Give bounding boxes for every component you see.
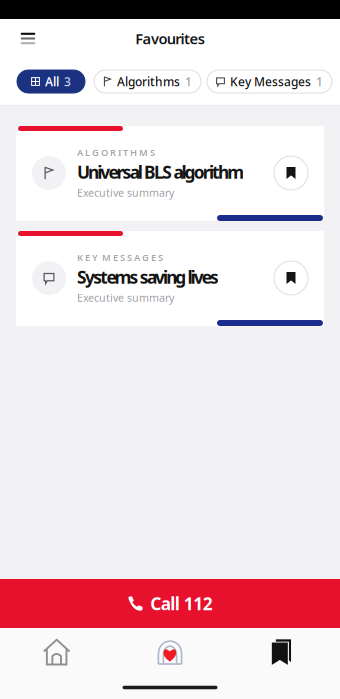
button[interactable]: Menu: [6, 20, 50, 56]
staticText: Executive summary: [77, 186, 174, 200]
button[interactable]: Favourites: [227, 630, 340, 674]
staticText: Call 112: [150, 592, 213, 615]
button[interactable]: K E Y M E S S A G E S: [16, 231, 324, 326]
staticText: 1: [316, 73, 323, 89]
staticText: K E Y M E S S A G E S: [77, 251, 163, 264]
button[interactable]: Home: [0, 630, 113, 674]
staticText: All: [45, 73, 59, 89]
button[interactable]: A L G O R I T H M S: [16, 126, 324, 221]
button[interactable]: CPR: [113, 630, 227, 674]
staticText: Favourites: [135, 29, 205, 48]
staticText: Key Messages: [230, 73, 311, 89]
staticText: 3: [64, 73, 71, 89]
staticText: Systems saving lives: [77, 266, 219, 289]
button[interactable]: Key Messages: [207, 70, 332, 93]
button[interactable]: Algorithms: [94, 70, 201, 93]
button[interactable]: All: [17, 70, 85, 93]
button[interactable]: Call 112: [0, 579, 340, 628]
staticText: Algorithms: [117, 73, 180, 89]
staticText: 1: [185, 73, 192, 89]
staticText: Executive summary: [77, 291, 174, 305]
staticText: A L G O R I T H M S: [77, 146, 155, 159]
staticText: Universal BLS algorithm: [77, 161, 244, 184]
